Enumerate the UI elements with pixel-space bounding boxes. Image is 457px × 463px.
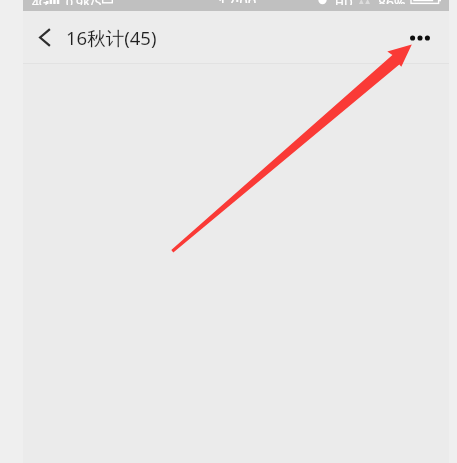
- staticText: 4G: [32, 0, 48, 5]
- button[interactable]: Back: [23, 11, 66, 64]
- staticText: 16秋计(45): [66, 25, 157, 50]
- staticText: 86%: [378, 0, 406, 4]
- button[interactable]: More options: [398, 11, 442, 64]
- staticText: 17:00: [218, 0, 257, 3]
- staticText: HD: [335, 0, 353, 5]
- staticText: 0.9K/S: [66, 0, 102, 5]
